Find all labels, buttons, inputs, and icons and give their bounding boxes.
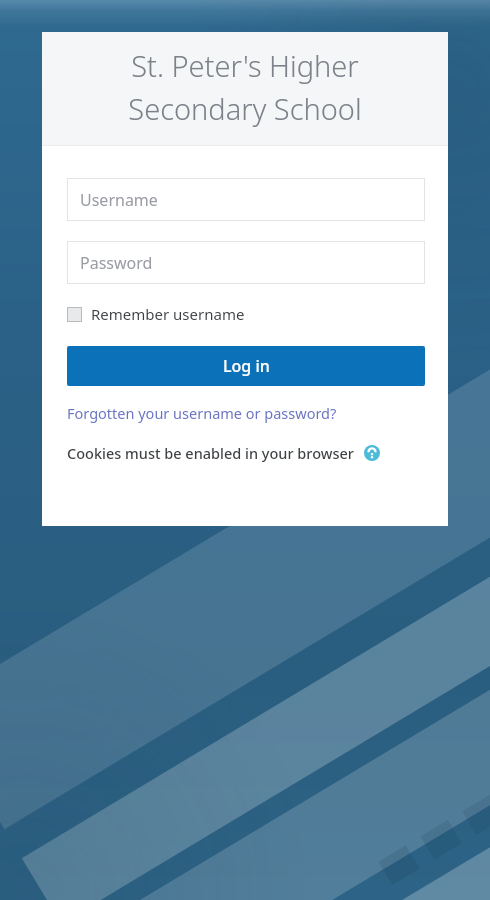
button[interactable]: Log in xyxy=(67,346,425,386)
staticText: Remember username xyxy=(91,304,245,324)
button[interactable]: Username xyxy=(67,178,425,221)
button[interactable]: Forgotten your username or password? xyxy=(67,403,337,423)
staticText: Cookies must be enabled in your browser xyxy=(67,443,354,463)
button[interactable]: Remember username xyxy=(67,302,245,326)
button[interactable]: Help about cookies xyxy=(364,445,380,461)
button[interactable]: Password xyxy=(67,241,425,284)
staticText: Password xyxy=(80,252,153,274)
staticText: Log in xyxy=(223,355,270,377)
staticText: St. Peter's Higher Secondary School xyxy=(128,46,362,128)
staticText: Username xyxy=(80,189,158,211)
